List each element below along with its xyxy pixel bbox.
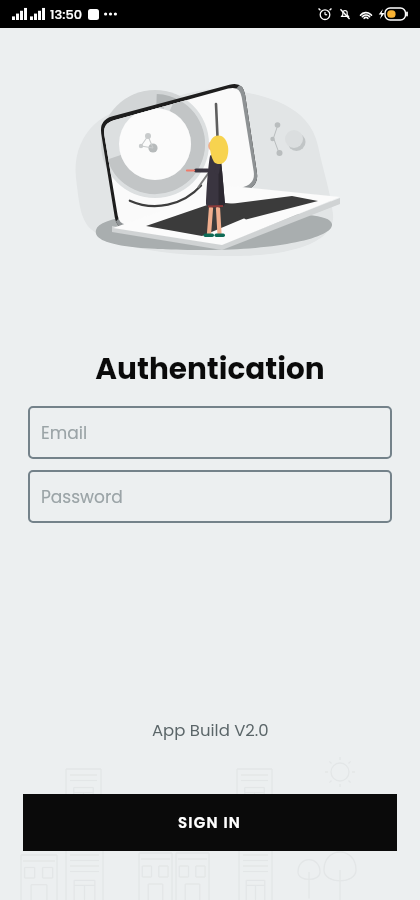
staticText: 13:50: [50, 5, 83, 23]
staticText: Email: [41, 421, 88, 445]
staticText: SIGN IN: [178, 812, 242, 833]
button[interactable]: Password: [28, 470, 392, 523]
staticText: Password: [41, 485, 123, 509]
button[interactable]: Email: [28, 406, 392, 459]
staticText: Authentication: [0, 348, 420, 389]
staticText: App Build V2.0: [152, 719, 269, 742]
button[interactable]: SIGN IN: [23, 794, 397, 851]
